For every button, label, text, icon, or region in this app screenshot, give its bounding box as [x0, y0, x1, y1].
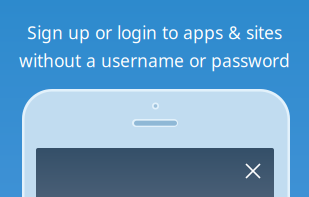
staticText: Sign up or login to apps & sites [27, 21, 282, 44]
staticText: without a username or password [19, 49, 290, 72]
button[interactable]: Close [237, 155, 269, 187]
